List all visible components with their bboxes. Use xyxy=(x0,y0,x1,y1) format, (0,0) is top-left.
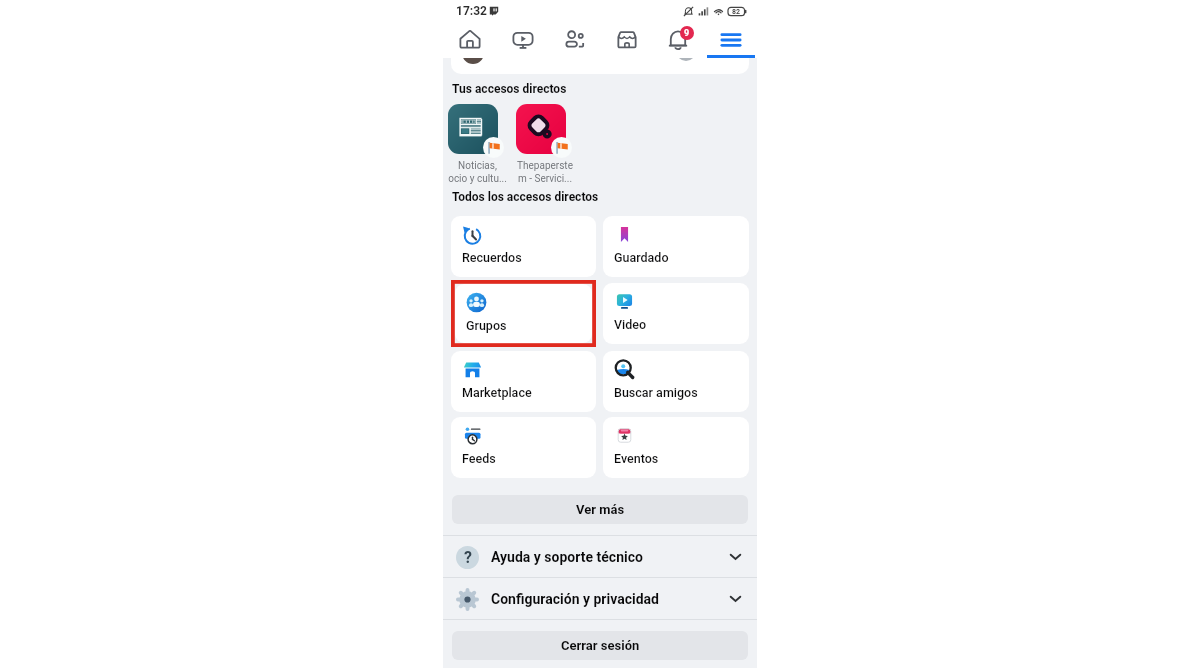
staticText: Guardado xyxy=(614,250,669,265)
staticText: Eventos xyxy=(614,451,659,466)
button[interactable]: Guardado xyxy=(603,216,749,277)
button[interactable]: Recuerdos xyxy=(451,216,596,277)
staticText: Configuración y privacidad xyxy=(491,591,659,607)
button[interactable]: Friends xyxy=(549,22,601,58)
button[interactable]: Buscar amigos xyxy=(603,351,749,412)
staticText: 17:32 xyxy=(456,4,487,18)
staticText: Cerrar sesión xyxy=(561,638,640,653)
staticText: Ayuda y soporte técnico xyxy=(491,549,643,565)
button[interactable]: Home xyxy=(443,22,496,58)
staticText: Feeds xyxy=(462,451,496,466)
staticText: Buscar amigos xyxy=(614,385,698,400)
staticText: Todos los accesos directos xyxy=(452,190,599,204)
staticText: 9 xyxy=(684,28,690,39)
button[interactable]: Video xyxy=(496,22,549,58)
button[interactable]: Ver más xyxy=(452,495,748,524)
button[interactable]: Configuración y privacidad xyxy=(443,578,757,619)
button[interactable]: Marketplace xyxy=(601,22,653,58)
staticText: Marketplace xyxy=(462,385,532,400)
staticText: Noticias, ocio y cultu... xyxy=(448,160,507,184)
button[interactable]: Feeds xyxy=(451,417,596,478)
button[interactable]: Noticias, ocio y cultu... xyxy=(448,104,506,184)
button[interactable]: Grupos xyxy=(455,284,592,343)
button[interactable]: Thepaperste m - Servici... xyxy=(516,104,574,184)
button[interactable]: Eventos xyxy=(603,417,749,478)
button[interactable]: Video xyxy=(603,283,749,344)
staticText: Grupos xyxy=(466,318,507,333)
staticText: Video xyxy=(614,317,647,332)
button[interactable]: Marketplace xyxy=(451,351,596,412)
staticText: Thepaperste m - Servici... xyxy=(517,160,573,184)
staticText: Ver más xyxy=(576,502,625,517)
staticText: ? xyxy=(464,548,472,567)
button[interactable]: Notifications xyxy=(653,22,705,58)
staticText: Recuerdos xyxy=(462,250,522,265)
button[interactable]: Menu xyxy=(705,22,757,58)
button[interactable]: Cerrar sesión xyxy=(452,631,748,660)
staticText: 82 xyxy=(732,8,741,16)
button[interactable]: ? xyxy=(443,536,757,577)
staticText: Tus accesos directos xyxy=(452,82,567,96)
